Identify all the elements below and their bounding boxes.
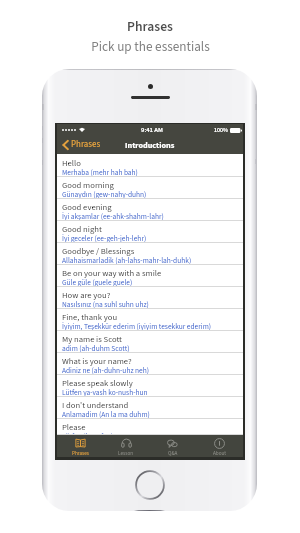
staticText: Good morning [62,179,114,191]
staticText: Günaydın (gew-nahy-duhn) [62,189,147,200]
button[interactable]: Good night [57,221,243,243]
button[interactable]: Be on your way with a smile [57,265,243,287]
button[interactable]: Hello [57,155,243,177]
staticText: Güle güle (guele guele) [62,277,133,288]
staticText: Nasılsınız (na suhl suhn uhz) [62,299,149,310]
button[interactable]: My name is Scott [57,331,243,353]
button[interactable]: What is your name? [57,353,243,375]
other: Back [62,140,69,150]
staticText: Pick up the essentials [91,37,210,56]
button[interactable]: Lesson [103,435,149,457]
staticText: Adiniz ne (ah-duhn-uhz neh) [62,365,149,376]
button[interactable]: Good morning [57,177,243,199]
button[interactable]: Phrases [57,435,103,457]
staticText: Be on your way with a smile [62,267,162,279]
staticText: İyi geceler (ee-geh-jeh-lehr) [62,233,147,244]
button[interactable]: Please speak slowly [57,375,243,397]
button[interactable]: Fine, thank you [57,309,243,331]
staticText: Lesson [118,450,134,457]
button[interactable]: Back [57,136,105,153]
staticText: Please speak slowly [62,377,133,389]
staticText: Phrases [72,450,89,457]
staticText: Lütfen ya-vash ko-nush-hun [62,387,148,398]
staticText: Good evening [62,201,112,213]
staticText: How are you? [62,289,111,301]
staticText: Allahaismarladik (ah-lahs-mahr-lah-duhk) [62,255,192,266]
staticText: My name is Scott [62,333,123,345]
staticText: I don't understand [62,399,129,411]
staticText: Merhaba (mehr hah bah) [62,167,138,178]
button[interactable]: I don't understand [57,397,243,419]
button[interactable]: Q&A [149,435,196,457]
button[interactable]: Good evening [57,199,243,221]
staticText: Good night [62,223,102,235]
button[interactable]: Goodbye / Blessings [57,243,243,265]
staticText: İyiyim, Teşekkür ederim (iyiyim tesekkur… [62,321,212,332]
staticText: Phrases [71,138,101,151]
staticText: About [213,450,227,457]
staticText: 100% [214,126,228,134]
button[interactable]: About [196,435,243,457]
button[interactable]: How are you? [57,287,243,309]
staticText: Q&A [168,450,178,457]
staticText: Please [62,421,86,433]
staticText: Phrases [127,17,173,36]
button[interactable]: Please [57,419,243,435]
staticText: Hello [62,157,81,169]
staticText: Introductions [125,140,175,152]
staticText: Goodbye / Blessings [62,245,135,257]
staticText: Anlamadim (An la ma duhm) [62,409,150,420]
staticText: 9:41 AM [141,125,163,134]
staticText: Fine, thank you [62,311,118,323]
staticText: İyi akşamlar (ee-ahk-shahm-lahr) [62,211,164,222]
staticText: Lütfen (lewt-fen) [62,431,114,442]
staticText: adim (ah-duhm Scott) [62,343,130,354]
staticText: What is your name? [62,355,132,367]
